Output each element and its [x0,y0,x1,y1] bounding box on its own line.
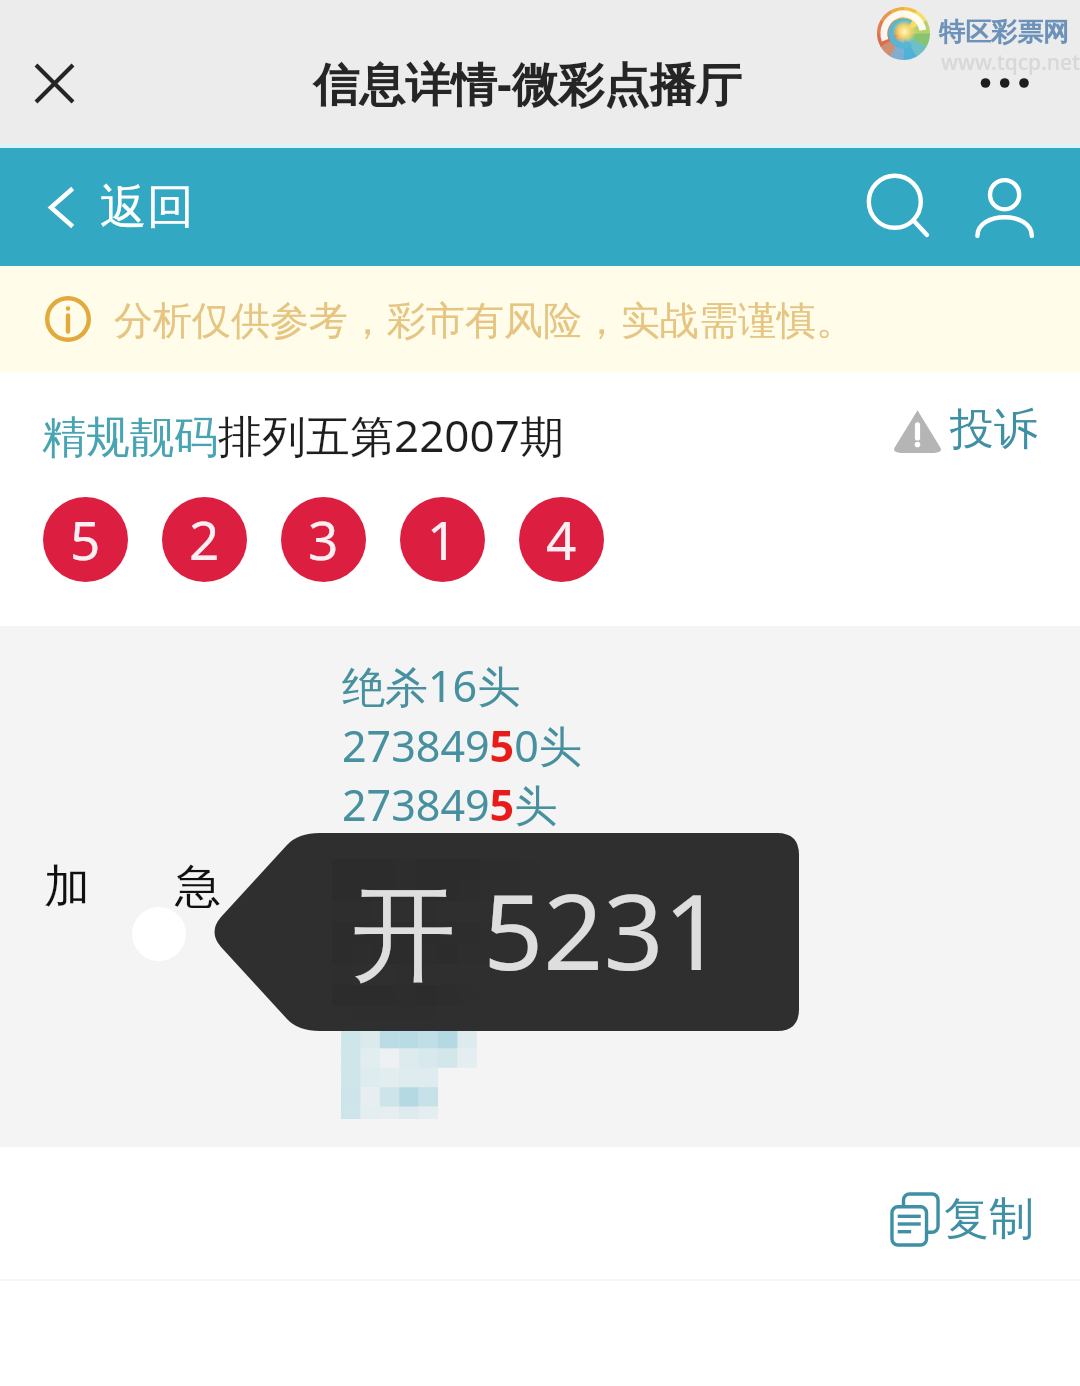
staticText: 分析仅供参考，彩市有风险，实战需谨慎。 [114,296,855,345]
button[interactable]: 复制 [885,1185,1040,1254]
staticText: 4 [546,503,577,575]
staticText: 投诉 [950,402,1038,457]
button[interactable]: 4 [519,497,604,582]
button[interactable]: 1 [400,497,485,582]
staticText: 2 [189,503,220,575]
button[interactable]: 返回 [49,178,204,237]
staticText: 2738495头 [342,775,558,834]
button[interactable]: Close [14,43,94,123]
staticText: 精规靓码排列五第22007期 [42,405,564,465]
staticText: 3 [308,503,339,575]
staticText: 1 [427,503,458,575]
button[interactable]: 投诉 [886,398,1042,461]
staticText: 特区彩票网 [939,16,1069,49]
button[interactable]: 5 [43,497,128,582]
staticText: 急 [175,858,221,916]
staticText: 绝杀16头 [342,656,521,715]
button[interactable]: 2 [162,497,247,582]
button[interactable]: Account [958,156,1050,258]
staticText: 开 5231 [351,858,724,1001]
staticText: 5 [70,503,101,575]
button[interactable]: More options [962,55,1042,111]
staticText: www.tqcp.net [941,48,1080,77]
staticText: 复制 [944,1191,1034,1248]
staticText: 返回 [100,178,194,237]
button[interactable]: 3 [281,497,366,582]
staticText: 信息详情-微彩点播厅 [313,52,742,115]
button[interactable]: Search [849,156,941,258]
staticText: 加 [44,858,90,916]
staticText: 27384950头 [342,716,582,775]
